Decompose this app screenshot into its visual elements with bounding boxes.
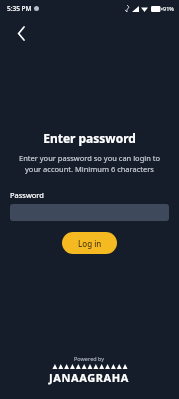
button[interactable]: Back [10, 22, 32, 44]
staticText: 91% [163, 5, 174, 12]
staticText: Powered by [74, 355, 105, 362]
button[interactable]: Log in [62, 232, 117, 254]
staticText: Password [10, 190, 44, 200]
staticText: Log in [78, 238, 102, 249]
staticText: 5:35 PM [7, 4, 32, 13]
staticText: JANAAGRAHA [49, 370, 130, 385]
staticText: Enter password [0, 130, 179, 146]
staticText: Enter your password so you can login to … [12, 153, 167, 174]
